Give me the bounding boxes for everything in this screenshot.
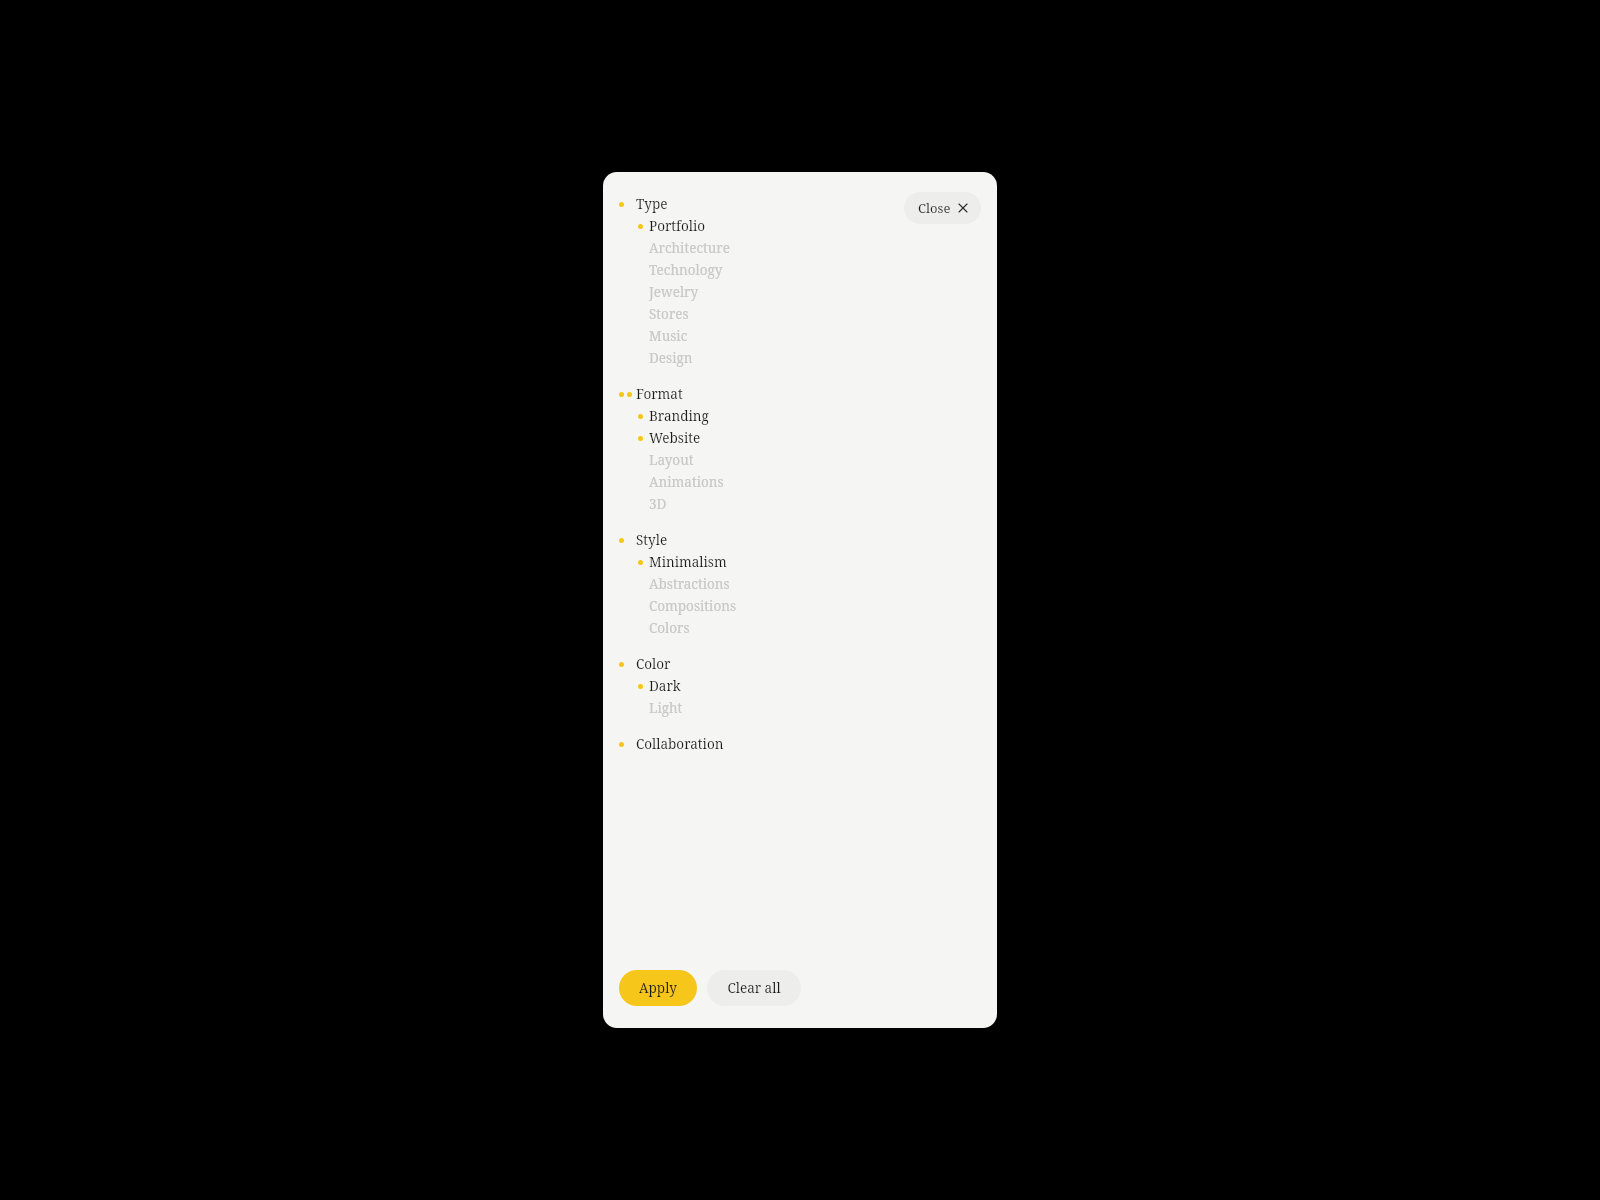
button[interactable]: Color: [619, 653, 981, 675]
button[interactable]: Music: [619, 325, 981, 347]
staticText: Branding: [649, 407, 709, 425]
button[interactable]: Jewelry: [619, 281, 981, 303]
staticText: Jewelry: [649, 283, 699, 301]
staticText: Color: [636, 655, 671, 673]
button[interactable]: Close: [904, 192, 981, 224]
button[interactable]: Architecture: [619, 237, 981, 259]
other: Close: [959, 204, 967, 212]
button[interactable]: Branding: [619, 405, 981, 427]
staticText: Collaboration: [636, 735, 724, 753]
staticText: Music: [649, 327, 688, 345]
staticText: Close: [918, 199, 951, 217]
button[interactable]: Clear all: [707, 970, 801, 1006]
staticText: Abstractions: [649, 575, 730, 593]
button[interactable]: Dark: [619, 675, 981, 697]
staticText: Format: [636, 385, 683, 403]
staticText: Light: [649, 699, 683, 717]
staticText: Type: [636, 195, 668, 213]
button[interactable]: Collaboration: [619, 733, 981, 755]
staticText: Style: [636, 531, 668, 549]
staticText: Architecture: [649, 239, 730, 257]
button[interactable]: 3D: [619, 493, 981, 515]
staticText: Dark: [649, 677, 681, 695]
button[interactable]: Layout: [619, 449, 981, 471]
button[interactable]: Light: [619, 697, 981, 719]
staticText: Design: [649, 349, 693, 367]
button[interactable]: Abstractions: [619, 573, 981, 595]
staticText: 3D: [649, 495, 667, 513]
button[interactable]: Format: [619, 383, 981, 405]
button[interactable]: Apply: [619, 970, 697, 1006]
staticText: Clear all: [727, 979, 781, 997]
staticText: Layout: [649, 451, 694, 469]
staticText: Apply: [639, 979, 677, 997]
staticText: Portfolio: [649, 217, 706, 235]
button[interactable]: Animations: [619, 471, 981, 493]
button[interactable]: Design: [619, 347, 981, 369]
staticText: Website: [649, 429, 701, 447]
button[interactable]: Stores: [619, 303, 981, 325]
button[interactable]: Portfolio: [619, 215, 981, 237]
button[interactable]: Style: [619, 529, 981, 551]
button[interactable]: Minimalism: [619, 551, 981, 573]
button[interactable]: Compositions: [619, 595, 981, 617]
staticText: Colors: [649, 619, 690, 637]
button[interactable]: Colors: [619, 617, 981, 639]
staticText: Stores: [649, 305, 689, 323]
staticText: Minimalism: [649, 553, 727, 571]
staticText: Compositions: [649, 597, 736, 615]
staticText: Technology: [649, 261, 723, 279]
button[interactable]: Technology: [619, 259, 981, 281]
button[interactable]: Website: [619, 427, 981, 449]
button[interactable]: Type: [619, 193, 981, 215]
staticText: Animations: [649, 473, 724, 491]
